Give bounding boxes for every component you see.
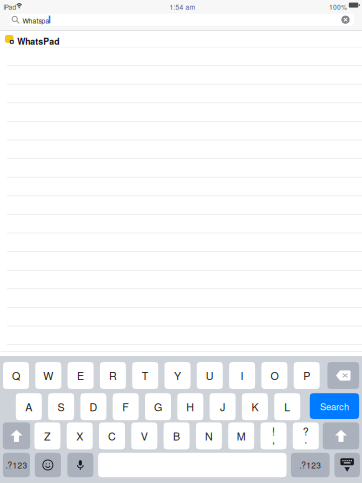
button[interactable]: O — [261, 362, 287, 389]
button[interactable]: R — [100, 362, 126, 389]
button[interactable]: N — [196, 422, 222, 449]
staticText: 1:54 am — [169, 2, 195, 11]
staticText: H — [186, 399, 194, 414]
staticText: A — [25, 399, 32, 414]
staticText: .?123 — [5, 459, 27, 471]
button[interactable]: Hide Keyboard — [334, 453, 360, 477]
button[interactable]: ? — [293, 422, 319, 449]
staticText: E — [77, 368, 84, 383]
staticText: Search — [320, 399, 349, 413]
button[interactable]: Z — [34, 422, 60, 449]
button[interactable]: S — [48, 393, 74, 420]
staticText: M — [237, 428, 246, 444]
button[interactable]: D — [80, 393, 106, 420]
button[interactable]: F — [113, 393, 139, 420]
button[interactable]: E — [68, 362, 94, 389]
staticText: X — [76, 428, 83, 444]
staticText: WhatsPad — [17, 35, 59, 47]
button[interactable]: T — [132, 362, 158, 389]
staticText: .?123 — [299, 459, 321, 471]
button[interactable]: G — [145, 393, 171, 420]
staticText: R — [109, 368, 117, 383]
staticText: 100% — [329, 2, 347, 11]
button[interactable]: U — [197, 362, 223, 389]
button[interactable]: ! — [260, 422, 286, 449]
staticText: F — [122, 399, 129, 414]
button[interactable]: Shift — [323, 422, 359, 449]
button[interactable]: X — [67, 422, 93, 449]
staticText: C — [108, 428, 116, 444]
staticText: Z — [44, 428, 51, 444]
staticText: V — [141, 428, 148, 444]
staticText: S — [58, 399, 65, 414]
button[interactable]: B — [164, 422, 190, 449]
staticText: L — [284, 399, 290, 414]
button[interactable]: H — [177, 393, 203, 420]
staticText: I — [241, 368, 244, 383]
button[interactable]: I — [229, 362, 255, 389]
button[interactable]: Shift — [3, 422, 30, 449]
staticText: O — [270, 368, 278, 383]
button[interactable]: Q — [3, 362, 29, 389]
staticText: G — [154, 399, 162, 414]
button[interactable]: V — [131, 422, 157, 449]
button[interactable]: Dictation — [67, 453, 93, 477]
button[interactable]: Emoji — [35, 453, 61, 477]
button[interactable]: W — [35, 362, 61, 389]
button[interactable]: Search — [310, 393, 359, 419]
button[interactable]: J — [210, 393, 236, 420]
button[interactable]: Numbers — [291, 453, 330, 477]
staticText: iPad — [4, 2, 17, 12]
staticText: W — [43, 368, 53, 383]
button[interactable]: Clear text — [341, 16, 350, 24]
button[interactable]: Delete — [327, 362, 359, 389]
button[interactable]: C — [99, 422, 125, 449]
staticText: K — [251, 399, 258, 414]
button[interactable]: Y — [164, 362, 190, 389]
button[interactable]: P — [294, 362, 320, 389]
staticText: N — [205, 428, 213, 444]
staticText: D — [89, 399, 97, 414]
staticText: . — [304, 431, 307, 447]
staticText: B — [173, 428, 180, 444]
button[interactable]: Search — [12, 16, 19, 24]
staticText: ! — [272, 423, 275, 438]
staticText: Y — [174, 368, 181, 383]
staticText: Whatspa — [23, 16, 50, 25]
button[interactable]: WhatsPad — [0, 31, 362, 47]
button[interactable]: A — [16, 393, 42, 420]
staticText: P — [303, 368, 310, 383]
staticText: U — [206, 368, 214, 383]
button[interactable]: L — [274, 393, 300, 420]
staticText: Q — [12, 368, 20, 383]
staticText: ? — [303, 423, 309, 438]
staticText: J — [220, 399, 225, 414]
staticText: , — [272, 431, 275, 447]
button[interactable]: Numbers — [3, 453, 30, 477]
button[interactable]: K — [242, 393, 268, 420]
staticText: T — [142, 368, 149, 383]
button[interactable]: M — [228, 422, 254, 449]
